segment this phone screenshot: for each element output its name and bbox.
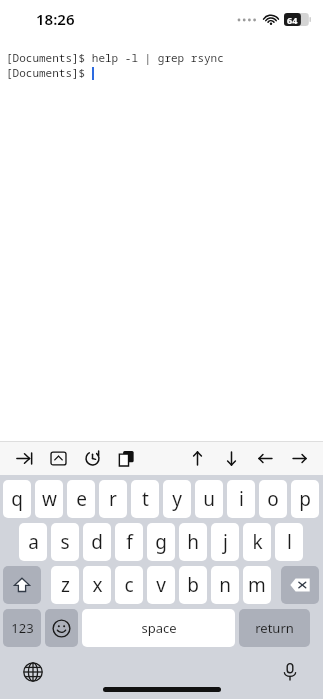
button[interactable]: e: [67, 480, 95, 518]
button[interactable]: Change keyboard: [18, 657, 48, 687]
staticText: e: [76, 486, 87, 512]
button[interactable]: q: [3, 480, 31, 518]
staticText: w: [42, 486, 57, 512]
button[interactable]: g: [147, 523, 175, 561]
staticText: c: [124, 572, 134, 598]
staticText: m: [248, 572, 266, 598]
staticText: p: [299, 486, 311, 512]
staticText: h: [187, 529, 199, 555]
staticText: r: [109, 486, 117, 512]
button[interactable]: j: [211, 523, 239, 561]
button[interactable]: k: [243, 523, 271, 561]
button[interactable]: u: [195, 480, 223, 518]
staticText: u: [203, 486, 215, 512]
button[interactable]: return: [239, 609, 310, 647]
staticText: a: [28, 529, 39, 555]
staticText: k: [252, 529, 263, 555]
button[interactable]: x: [83, 566, 111, 604]
button[interactable]: y: [163, 480, 191, 518]
button[interactable]: Arrow down: [219, 446, 243, 470]
staticText: i: [239, 486, 244, 512]
staticText: l: [287, 529, 292, 555]
button[interactable]: m: [243, 566, 271, 604]
button[interactable]: l: [275, 523, 303, 561]
button[interactable]: n: [211, 566, 239, 604]
button[interactable]: Dictation: [275, 657, 305, 687]
button[interactable]: t: [131, 480, 159, 518]
button[interactable]: Paste: [114, 446, 138, 470]
button[interactable]: [3, 566, 41, 604]
button[interactable]: z: [51, 566, 79, 604]
staticText: x: [92, 572, 103, 598]
button[interactable]: o: [259, 480, 287, 518]
button[interactable]: [281, 566, 319, 604]
button[interactable]: [45, 609, 78, 647]
button[interactable]: Arrow up: [185, 446, 209, 470]
staticText: 64: [287, 14, 298, 26]
button[interactable]: Tab: [12, 446, 36, 470]
staticText: n: [219, 572, 231, 598]
button[interactable]: w: [35, 480, 63, 518]
staticText: y: [172, 486, 182, 512]
staticText: b: [187, 572, 199, 598]
staticText: space: [141, 619, 177, 637]
button[interactable]: c: [115, 566, 143, 604]
staticText: return: [255, 619, 294, 637]
button[interactable]: History: [80, 446, 104, 470]
staticText: [Documents]$: [6, 65, 92, 80]
staticText: 18:26: [36, 9, 75, 29]
button[interactable]: p: [291, 480, 319, 518]
button[interactable]: a: [19, 523, 47, 561]
button[interactable]: h: [179, 523, 207, 561]
staticText: s: [60, 529, 70, 555]
staticText: v: [156, 572, 166, 598]
button[interactable]: f: [115, 523, 143, 561]
staticText: z: [61, 572, 70, 598]
button[interactable]: 123: [3, 609, 41, 647]
staticText: o: [267, 486, 279, 512]
button[interactable]: b: [179, 566, 207, 604]
button[interactable]: s: [51, 523, 79, 561]
button[interactable]: d: [83, 523, 111, 561]
staticText: g: [155, 529, 167, 555]
staticText: 123: [11, 619, 34, 637]
button[interactable]: v: [147, 566, 175, 604]
staticText: f: [126, 529, 133, 555]
button[interactable]: Arrow left: [253, 446, 277, 470]
button[interactable]: Arrow right: [287, 446, 311, 470]
staticText: [Documents]$ help -l | grep rsync: [6, 50, 224, 65]
staticText: t: [142, 486, 149, 512]
button[interactable]: i: [227, 480, 255, 518]
staticText: d: [91, 529, 103, 555]
button[interactable]: r: [99, 480, 127, 518]
staticText: j: [223, 529, 228, 555]
button[interactable]: Control: [46, 446, 70, 470]
button[interactable]: space: [82, 609, 235, 647]
staticText: q: [11, 486, 23, 512]
